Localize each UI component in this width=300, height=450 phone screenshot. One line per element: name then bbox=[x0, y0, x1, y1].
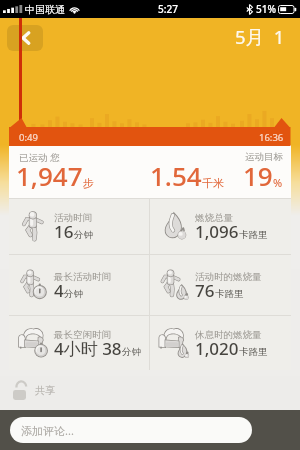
staticText: 4小时 38 bbox=[54, 337, 122, 360]
staticText: 中国联通 bbox=[25, 3, 65, 16]
staticText: 千米 bbox=[202, 176, 224, 190]
button[interactable]: 燃烧总量 bbox=[150, 199, 291, 254]
button[interactable]: 最长空闲时间 bbox=[9, 316, 149, 370]
staticText: 1.54 bbox=[150, 158, 202, 193]
staticText: 分钟 bbox=[122, 346, 141, 358]
staticText: 已运动 您 bbox=[19, 151, 60, 164]
staticText: 添加评论... bbox=[21, 423, 74, 438]
staticText: 最长活动时间 bbox=[54, 271, 111, 283]
staticText: 5:27 bbox=[158, 2, 178, 16]
staticText: 分钟 bbox=[74, 229, 93, 241]
staticText: 最长空闲时间 bbox=[54, 329, 111, 341]
staticText: 1,096 bbox=[195, 220, 239, 243]
staticText: 1,020 bbox=[195, 337, 239, 360]
staticText: 卡路里 bbox=[215, 288, 244, 300]
staticText: 76 bbox=[195, 279, 215, 302]
staticText: 51% bbox=[256, 2, 276, 16]
staticText: 16:36 bbox=[259, 131, 284, 144]
button[interactable]: Back bbox=[7, 25, 43, 51]
button[interactable]: 活动时的燃烧量 bbox=[150, 255, 291, 315]
button[interactable]: 添加评论... bbox=[10, 417, 252, 443]
staticText: 运动目标 bbox=[245, 151, 283, 163]
staticText: 卡路里 bbox=[239, 229, 268, 241]
staticText: 0:49 bbox=[19, 131, 38, 144]
staticText: 分钟 bbox=[64, 288, 83, 300]
staticText: 步 bbox=[83, 176, 94, 190]
staticText: 4 bbox=[54, 279, 64, 302]
staticText: 活动时间 bbox=[54, 212, 92, 224]
staticText: 卡路里 bbox=[239, 346, 268, 358]
staticText: 休息时的燃烧量 bbox=[195, 329, 262, 341]
staticText: 19 bbox=[243, 158, 273, 193]
staticText: 5月 1 bbox=[235, 24, 285, 49]
button[interactable]: 活动时间 bbox=[9, 199, 149, 254]
button[interactable]: 最长活动时间 bbox=[9, 255, 149, 315]
staticText: 1,947 bbox=[16, 158, 83, 193]
button[interactable]: 休息时的燃烧量 bbox=[150, 316, 291, 370]
staticText: 16 bbox=[54, 220, 74, 243]
staticText: 活动时的燃烧量 bbox=[195, 271, 262, 283]
staticText: 共享 bbox=[35, 384, 55, 397]
staticText: 燃烧总量 bbox=[195, 212, 233, 224]
staticText: % bbox=[273, 175, 283, 190]
button[interactable]: 共享 bbox=[0, 370, 300, 410]
